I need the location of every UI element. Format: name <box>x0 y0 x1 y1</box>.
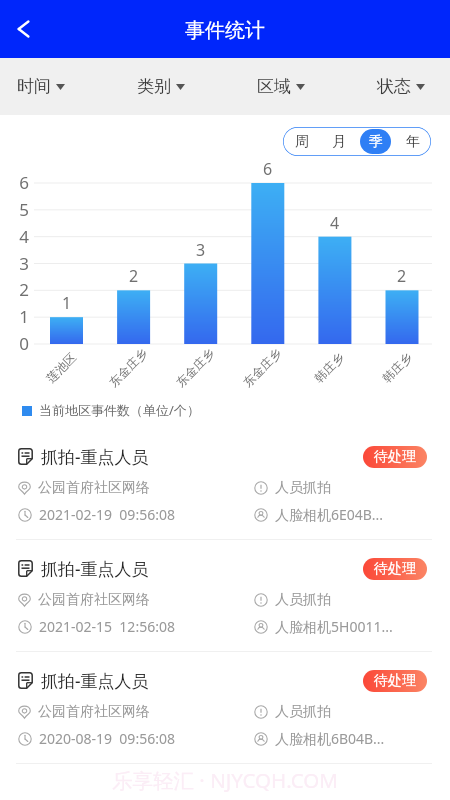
staticText: 周 <box>295 133 309 151</box>
staticText: 时间 <box>17 76 51 97</box>
staticText: 韩庄乡 <box>311 349 347 386</box>
staticText: 抓拍-重点人员 <box>41 445 149 468</box>
staticText: 0 <box>8 332 29 355</box>
button[interactable]: 区域 <box>241 58 321 115</box>
staticText: 人脸相机5H0011... <box>275 617 393 636</box>
button[interactable]: Back <box>0 5 48 53</box>
button[interactable]: 抓拍-重点人员 <box>0 428 450 539</box>
button[interactable]: 抓拍-重点人员 <box>0 540 450 651</box>
button[interactable]: 月 <box>320 127 357 156</box>
button[interactable]: 周 <box>283 127 320 156</box>
staticText: 抓拍-重点人员 <box>41 557 149 580</box>
staticText: 2021-02-15 12:56:08 <box>39 617 175 636</box>
staticText: 韩庄乡 <box>379 349 415 386</box>
staticText: 状态 <box>377 76 411 97</box>
button[interactable]: 待处理 <box>363 670 427 692</box>
staticText: 5 <box>8 198 29 221</box>
staticText: 乐享轻汇 · NJYCQH.COM <box>112 766 338 794</box>
staticText: 4 <box>8 225 29 248</box>
staticText: 2 <box>129 265 139 287</box>
button[interactable]: 待处理 <box>363 558 427 580</box>
staticText: 事件统计 <box>185 18 265 43</box>
staticText: 4 <box>330 212 340 234</box>
staticText: 人脸相机6E04B... <box>275 505 384 524</box>
staticText: 年 <box>406 133 420 151</box>
staticText: 1 <box>62 292 72 314</box>
staticText: 人员抓拍 <box>275 703 331 721</box>
staticText: 1 <box>8 305 29 328</box>
staticText: 东金庄乡 <box>106 345 150 390</box>
staticText: 类别 <box>137 76 171 97</box>
staticText: 人员抓拍 <box>275 591 331 609</box>
button[interactable]: 时间 <box>1 58 81 115</box>
staticText: 月 <box>332 133 346 151</box>
button[interactable]: 类别 <box>121 58 201 115</box>
staticText: 区域 <box>257 76 291 97</box>
staticText: 人脸相机6B04B... <box>275 729 385 748</box>
staticText: 公园首府社区网络 <box>38 479 150 497</box>
staticText: 抓拍-重点人员 <box>41 669 149 692</box>
staticText: 公园首府社区网络 <box>38 591 150 609</box>
button[interactable]: 抓拍-重点人员 <box>0 652 450 763</box>
staticText: 6 <box>8 171 29 194</box>
staticText: 待处理 <box>374 560 416 578</box>
button[interactable]: 待处理 <box>363 446 427 468</box>
staticText: 当前地区事件数（单位/个） <box>39 401 200 419</box>
staticText: 公园首府社区网络 <box>38 703 150 721</box>
staticText: 莲池区 <box>43 349 79 386</box>
staticText: 东金庄乡 <box>173 345 217 390</box>
staticText: 3 <box>8 252 29 275</box>
button[interactable]: 状态 <box>361 58 441 115</box>
staticText: 东金庄乡 <box>240 345 284 390</box>
button[interactable]: 季 <box>357 127 394 156</box>
staticText: 2 <box>397 265 407 287</box>
staticText: 季 <box>369 133 383 151</box>
staticText: 待处理 <box>374 448 416 466</box>
button[interactable]: 年 <box>394 127 431 156</box>
staticText: 2021-02-19 09:56:08 <box>39 505 175 524</box>
staticText: 2 <box>8 278 29 301</box>
staticText: 待处理 <box>374 672 416 690</box>
staticText: 6 <box>263 158 273 180</box>
staticText: 3 <box>196 239 206 261</box>
staticText: 人员抓拍 <box>275 479 331 497</box>
staticText: 2020-08-19 09:56:08 <box>39 729 175 748</box>
